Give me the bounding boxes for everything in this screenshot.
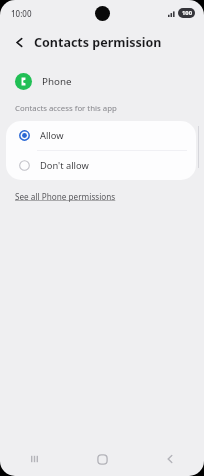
button[interactable]: Phone (0, 71, 204, 92)
button[interactable]: Back (9, 32, 29, 52)
button[interactable]: Back (136, 442, 204, 476)
staticText: Contacts access for this app (15, 103, 117, 114)
staticText: Don't allow (40, 159, 89, 172)
button[interactable]: Home (68, 442, 136, 476)
staticText: See all Phone permissions (15, 191, 116, 202)
staticText: 100 (182, 9, 192, 17)
staticText: 10:00 (11, 8, 32, 19)
staticText: Contacts permission (34, 34, 162, 51)
button[interactable]: See all Phone permissions (15, 189, 116, 204)
button[interactable]: Recent apps (0, 442, 68, 476)
staticText: Phone (42, 75, 72, 88)
button[interactable]: Allow (6, 121, 196, 150)
button[interactable]: Don't allow (6, 151, 196, 180)
staticText: Allow (40, 129, 64, 142)
